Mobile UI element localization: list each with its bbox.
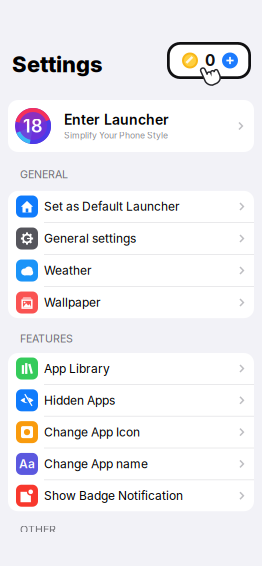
staticText: Settings — [12, 51, 103, 78]
staticText: Wallpaper — [44, 295, 101, 310]
button[interactable]: Coins: 0 — add more — [167, 42, 251, 79]
staticText: General settings — [44, 231, 136, 246]
staticText: Show Badge Notification — [44, 488, 183, 503]
staticText: Aa — [19, 457, 35, 471]
staticText: Enter Launcher — [64, 111, 169, 128]
staticText: Hidden Apps — [44, 393, 115, 408]
button[interactable]: App Library — [8, 353, 254, 384]
button[interactable]: Hidden Apps — [8, 385, 254, 416]
staticText: FEATURES — [20, 332, 73, 345]
button[interactable]: Change App Icon — [8, 417, 254, 448]
button[interactable]: Weather — [8, 255, 254, 286]
staticText: GENERAL — [20, 168, 68, 181]
button[interactable]: General settings — [8, 223, 254, 254]
button[interactable]: Aa — [8, 448, 254, 479]
staticText: 18 — [23, 115, 43, 137]
button[interactable]: Show Badge Notification — [8, 480, 254, 511]
staticText: App Library — [44, 361, 110, 376]
staticText: Change App Icon — [44, 425, 140, 439]
staticText: Change App name — [44, 457, 148, 471]
staticText: OTHER — [20, 523, 56, 536]
button[interactable]: Set as Default Launcher — [8, 191, 254, 222]
button[interactable]: Wallpaper — [8, 287, 254, 318]
staticText: Simplify Your Phone Style — [64, 130, 168, 141]
button[interactable]: 18 — [8, 100, 254, 152]
staticText: Weather — [44, 263, 92, 278]
staticText: 0 — [205, 51, 215, 70]
staticText: Set as Default Launcher — [44, 199, 180, 214]
